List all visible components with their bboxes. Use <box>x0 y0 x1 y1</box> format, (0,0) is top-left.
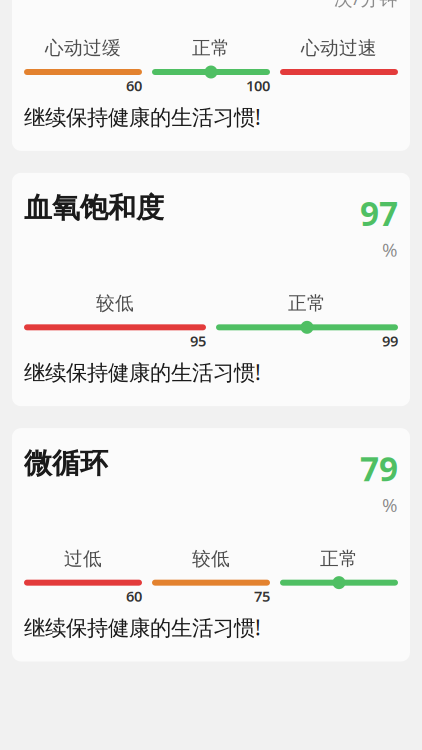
staticText: 过低 <box>64 547 102 570</box>
staticText: 较低 <box>192 547 230 570</box>
staticText: 正常 <box>288 292 326 315</box>
staticText: 次/分钟 <box>334 0 398 11</box>
staticText: 95 <box>190 331 206 351</box>
staticText: 血氧饱和度 <box>24 191 164 225</box>
staticText: 100 <box>246 76 270 95</box>
staticText: % <box>382 237 398 262</box>
staticText: 97 <box>360 191 398 235</box>
staticText: 60 <box>126 586 142 606</box>
staticText: 60 <box>126 76 142 95</box>
staticText: 继续保持健康的生活习惯! <box>24 102 261 131</box>
staticText: 微循环 <box>24 446 108 481</box>
staticText: 心动过速 <box>301 37 377 59</box>
staticText: 75 <box>254 586 270 606</box>
staticText: 继续保持健康的生活习惯! <box>24 613 261 641</box>
staticText: 79 <box>360 446 398 490</box>
staticText: 继续保持健康的生活习惯! <box>24 358 261 386</box>
staticText: 正常 <box>192 37 230 59</box>
staticText: % <box>382 492 398 517</box>
staticText: 99 <box>382 331 398 351</box>
staticText: 较低 <box>96 292 134 315</box>
staticText: 正常 <box>320 547 358 570</box>
staticText: 心动过缓 <box>45 37 121 59</box>
